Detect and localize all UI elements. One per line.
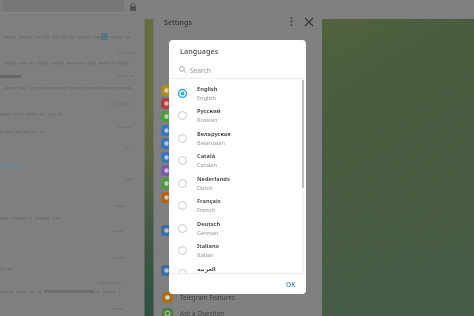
button[interactable]: Telegram Features — [162, 290, 322, 304]
button[interactable]: Русский — [169, 104, 306, 127]
staticText: Ask a Question — [180, 309, 225, 316]
staticText: Català — [197, 152, 216, 160]
button[interactable]: English — [169, 82, 306, 105]
button[interactable]: More options — [284, 14, 299, 29]
staticText: Беларуская — [197, 130, 231, 138]
staticText: العربية — [197, 266, 216, 273]
staticText: Français — [197, 197, 221, 205]
staticText: Русский — [197, 107, 221, 115]
button[interactable]: العربية — [169, 262, 306, 273]
button[interactable]: Deutsch — [169, 217, 306, 240]
staticText: Russian — [197, 116, 218, 124]
staticText: English — [197, 85, 218, 93]
button[interactable]: Ask a Question — [162, 306, 322, 316]
staticText: Search — [190, 66, 211, 75]
staticText: OK — [286, 280, 296, 289]
button[interactable]: Français — [169, 194, 306, 217]
button[interactable]: Беларуская — [169, 127, 306, 150]
button[interactable]: Close — [301, 14, 316, 29]
button[interactable]: Italiano — [169, 239, 306, 262]
staticText: English — [197, 94, 217, 102]
staticText: Nederlands — [197, 175, 230, 183]
button[interactable]: Nederlands — [169, 172, 306, 195]
button[interactable]: Search — [179, 62, 306, 78]
staticText: Deutsch — [197, 220, 221, 228]
staticText: Telegram Features — [180, 293, 235, 302]
staticText: Italian — [197, 251, 214, 259]
staticText: Languages — [180, 46, 219, 56]
staticText: Catalan — [197, 161, 217, 169]
staticText: Italiano — [197, 242, 220, 250]
staticText: Settings — [164, 17, 192, 27]
button[interactable]: OK — [286, 280, 296, 289]
staticText: French — [197, 206, 215, 214]
staticText: Belarusian — [197, 139, 225, 147]
staticText: German — [197, 229, 219, 237]
staticText: Dutch — [197, 184, 213, 192]
button[interactable]: Català — [169, 149, 306, 172]
